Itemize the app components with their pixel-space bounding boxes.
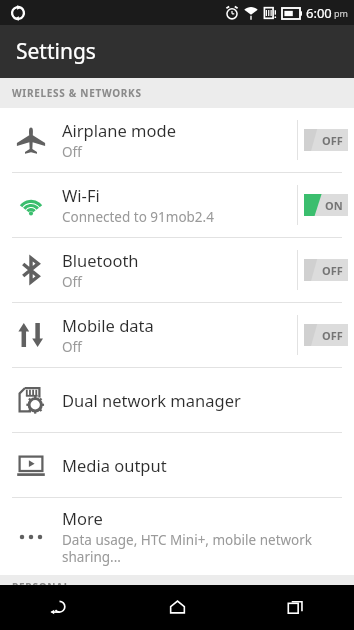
staticText: More [62, 507, 103, 529]
button[interactable]: Off [298, 108, 354, 172]
staticText: WIRELESS & NETWORKS [12, 86, 142, 100]
staticText: Off [62, 143, 82, 161]
button[interactable]: Wi-Fi [0, 173, 354, 237]
staticText: Off [62, 273, 82, 291]
button[interactable]: Home [118, 585, 236, 630]
button[interactable]: On [298, 173, 354, 237]
button[interactable]: Airplane mode [0, 108, 354, 172]
staticText: Airplane mode [62, 119, 176, 141]
button[interactable]: Bluetooth [0, 238, 354, 302]
button[interactable]: Recents [236, 585, 354, 630]
staticText: Data usage, HTC Mini+, mobile network sh… [62, 531, 313, 566]
staticText: PERSONAL [12, 580, 71, 585]
button[interactable]: More [0, 498, 354, 575]
staticText: OFF [322, 133, 343, 148]
button[interactable]: Back [0, 585, 118, 630]
staticText: Settings [16, 37, 96, 66]
staticText: Off [62, 338, 82, 356]
staticText: OFF [322, 328, 343, 343]
button[interactable]: Dual network manager [0, 368, 354, 432]
staticText: Wi-Fi [62, 184, 100, 206]
staticText: Connected to 91mob2.4 [62, 208, 214, 226]
staticText: Mobile data [62, 314, 154, 336]
button[interactable]: Off [298, 238, 354, 302]
staticText: Media output [62, 454, 167, 476]
staticText: pm [334, 7, 348, 19]
button[interactable]: Mobile data [0, 303, 354, 367]
staticText: 6:00 [306, 4, 332, 22]
button[interactable]: Media output [0, 433, 354, 497]
staticText: OFF [322, 263, 343, 278]
staticText: Bluetooth [62, 249, 139, 271]
staticText: Dual network manager [62, 389, 241, 411]
staticText: ON [325, 198, 343, 213]
button[interactable]: Off [298, 303, 354, 367]
